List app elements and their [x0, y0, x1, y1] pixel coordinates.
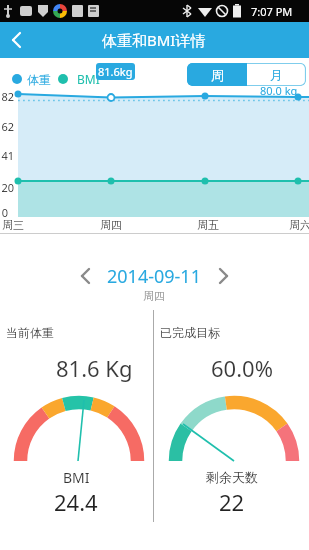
staticText: 60.0% — [211, 353, 273, 383]
staticText: 剩余天数 — [206, 469, 258, 485]
staticText: 24.4 — [54, 487, 98, 517]
staticText: 周 — [211, 67, 224, 83]
staticText: 22 — [219, 487, 245, 517]
staticText: 7:07 PM — [251, 4, 293, 19]
button[interactable] — [70, 262, 98, 290]
staticText: 0 — [1, 205, 8, 220]
staticText: 已完成目标 — [160, 325, 220, 340]
button[interactable]: 月 — [247, 63, 306, 86]
staticText: BMI — [63, 468, 90, 487]
staticText: 当前体重 — [6, 325, 54, 340]
button[interactable] — [211, 262, 239, 290]
staticText: 2014-09-11 — [107, 264, 201, 289]
staticText: 20 — [1, 180, 14, 195]
staticText: 体重和BMI详情 — [102, 30, 206, 50]
staticText: 周四 — [100, 218, 122, 232]
staticText: 80.0 kg — [260, 83, 298, 98]
staticText: 41 — [1, 148, 14, 163]
staticText: 体重 — [27, 72, 51, 87]
staticText: 周五 — [197, 218, 219, 232]
staticText: 81.6 Kg — [56, 353, 133, 383]
staticText: 周四 — [143, 289, 165, 303]
button[interactable] — [0, 22, 40, 58]
staticText: 62 — [1, 119, 14, 134]
staticText: 月 — [270, 67, 283, 83]
staticText: BMI — [77, 71, 100, 87]
button[interactable]: 周 — [187, 63, 247, 86]
staticText: 周三 — [2, 218, 24, 232]
staticText: 周六 — [289, 218, 309, 232]
staticText: 81.6kg — [98, 64, 133, 79]
staticText: 82 — [1, 89, 14, 104]
